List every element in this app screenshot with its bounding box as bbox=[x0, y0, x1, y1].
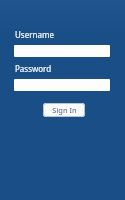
button[interactable] bbox=[14, 79, 110, 91]
staticText: Sign In bbox=[52, 105, 77, 115]
button[interactable] bbox=[14, 45, 110, 57]
staticText: Password bbox=[15, 63, 52, 74]
button[interactable]: Sign In bbox=[43, 103, 85, 117]
staticText: Username bbox=[15, 29, 54, 40]
